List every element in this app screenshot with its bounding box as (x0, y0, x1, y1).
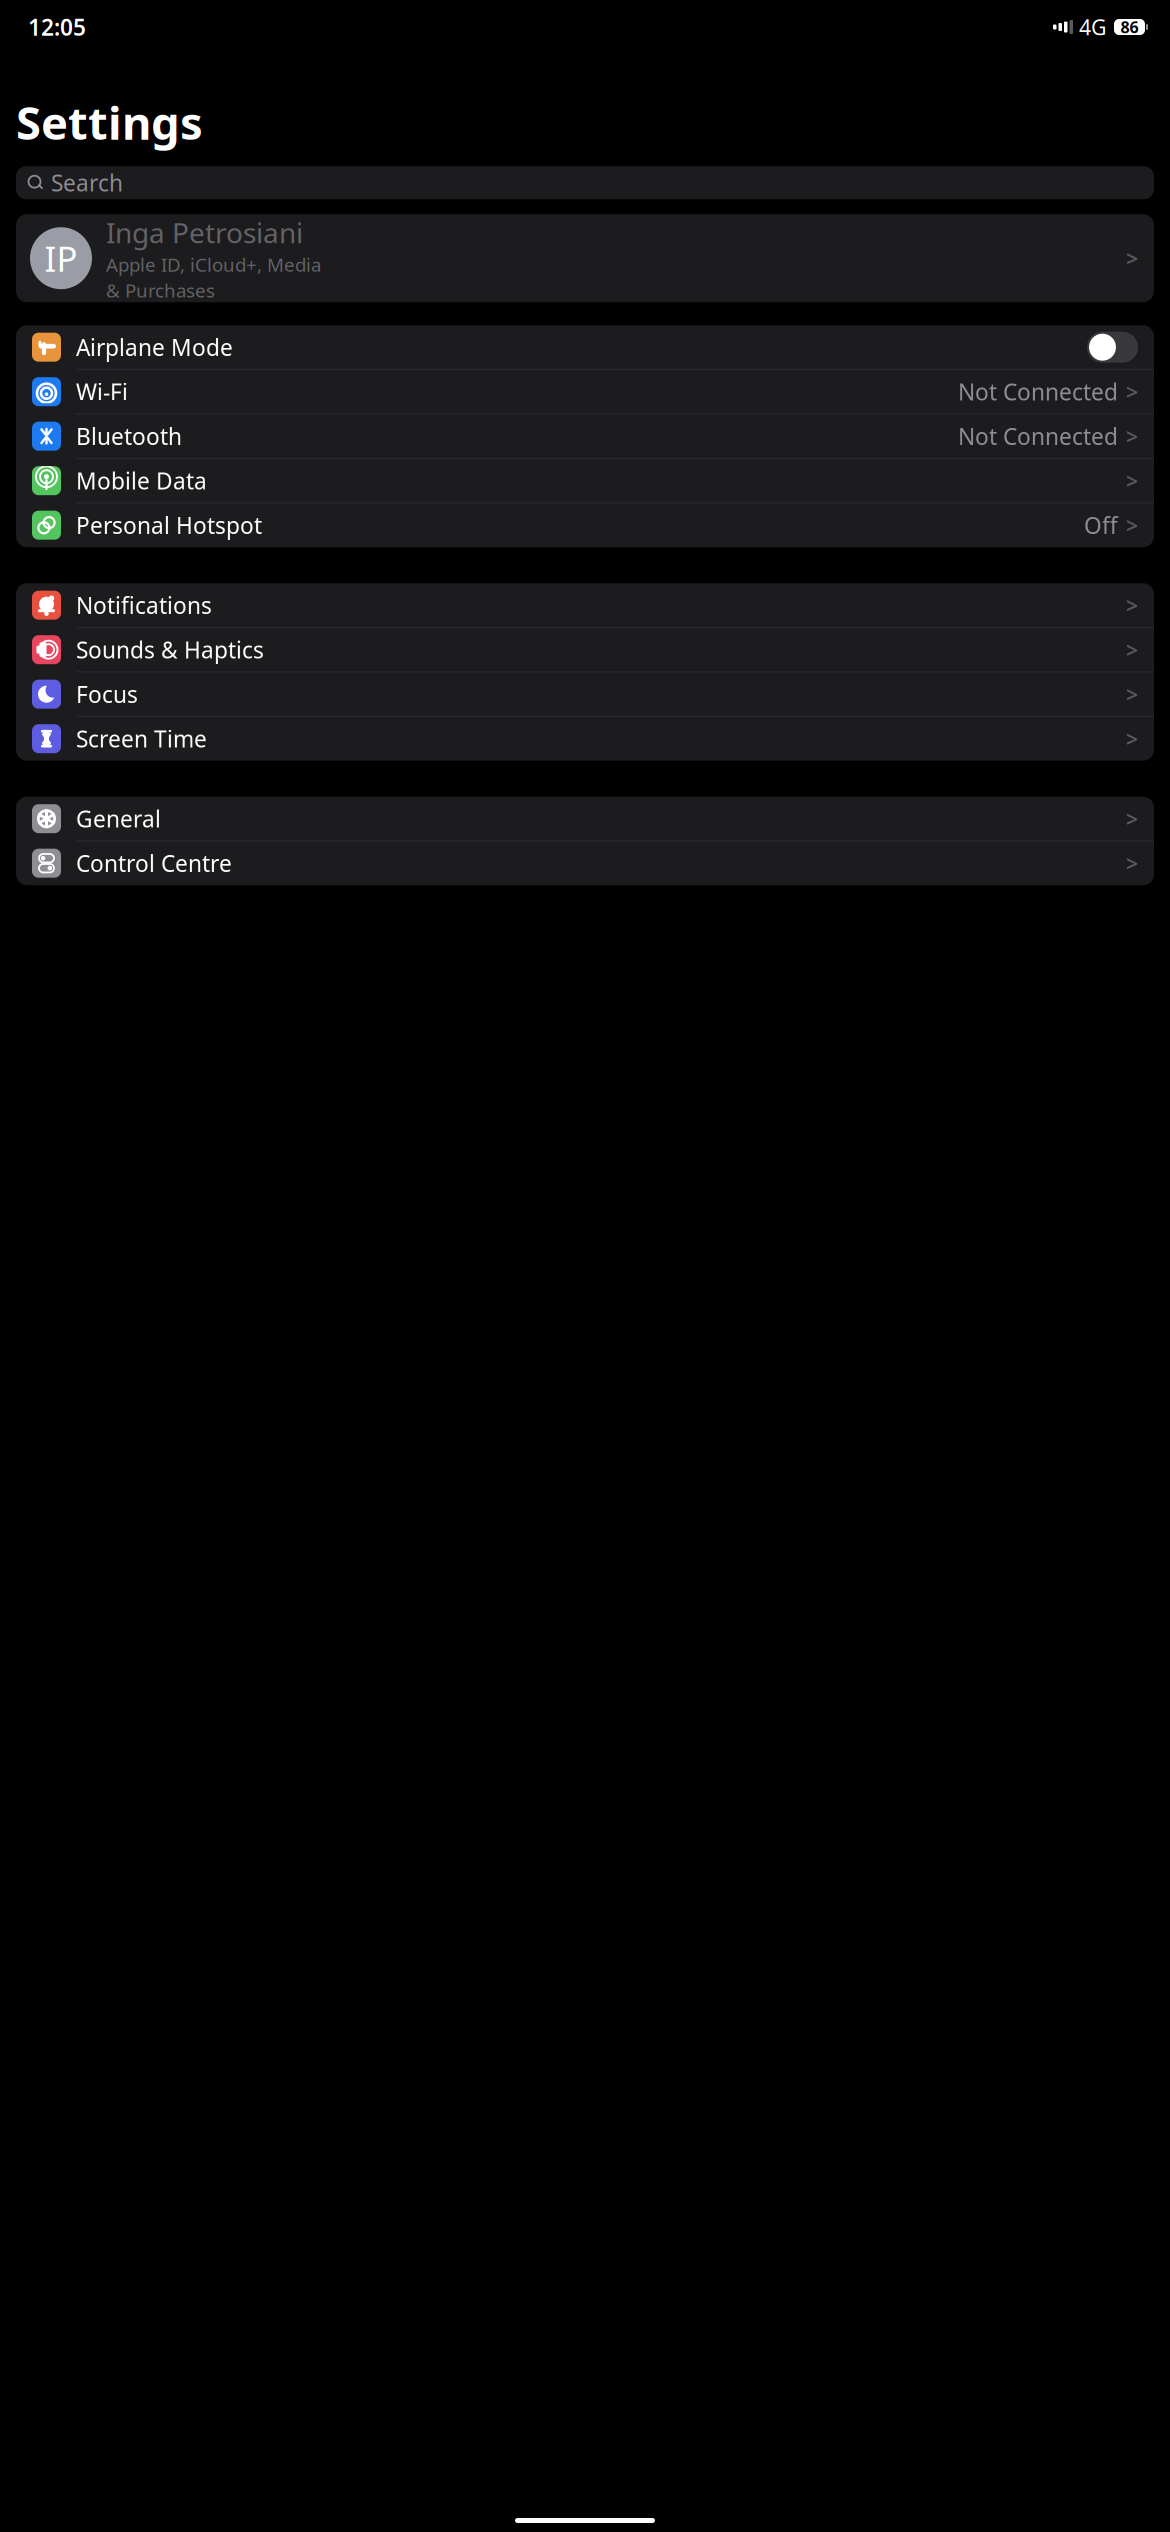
staticText: 86 (1120, 16, 1138, 38)
staticText: & Purchases (106, 278, 215, 303)
staticText: Not Connected (958, 421, 1118, 451)
staticText: Off (1084, 510, 1118, 540)
button[interactable]: Bluetooth (16, 414, 1154, 458)
staticText: Mobile Data (76, 466, 207, 496)
staticText: > (1126, 422, 1138, 450)
staticText: Sounds & Haptics (76, 635, 264, 665)
staticText: Not Connected (958, 377, 1118, 407)
staticText: > (1126, 244, 1138, 272)
button[interactable]: Screen Time (16, 717, 1154, 761)
staticText: Control Centre (76, 848, 232, 878)
staticText: 4G (1079, 13, 1107, 41)
staticText: 12:05 (28, 12, 86, 42)
staticText: Bluetooth (76, 421, 182, 451)
staticText: > (1126, 724, 1138, 753)
button[interactable]: Search (16, 166, 1154, 199)
staticText: > (1126, 635, 1138, 664)
button[interactable]: Mobile Data (16, 459, 1154, 503)
staticText: > (1126, 466, 1138, 495)
button[interactable]: Sounds & Haptics (16, 628, 1154, 672)
button[interactable]: Control Centre (16, 841, 1154, 885)
button[interactable]: General (16, 797, 1154, 841)
staticText: Search (51, 168, 123, 198)
button[interactable]: Focus (16, 672, 1154, 716)
staticText: > (1126, 849, 1138, 877)
staticText: Settings (16, 92, 203, 152)
staticText: Wi-Fi (76, 377, 128, 407)
button[interactable]: Airplane Mode (16, 325, 1154, 369)
staticText: > (1126, 680, 1138, 708)
staticText: > (1126, 377, 1138, 406)
button[interactable]: Personal Hotspot (16, 503, 1154, 547)
staticText: Personal Hotspot (76, 510, 262, 540)
button[interactable]: Notifications (16, 583, 1154, 627)
staticText: Apple ID, iCloud+, Media (106, 252, 321, 277)
staticText: > (1126, 511, 1138, 539)
staticText: Notifications (76, 590, 212, 620)
staticText: Focus (76, 679, 138, 709)
staticText: > (1126, 591, 1138, 619)
staticText: > (1126, 804, 1138, 833)
button[interactable]: Wi-Fi (16, 370, 1154, 414)
staticText: Screen Time (76, 724, 207, 754)
staticText: General (76, 804, 161, 834)
staticText: IP (44, 235, 77, 281)
staticText: Inga Petrosiani (106, 214, 303, 251)
button[interactable]: IP (16, 214, 1154, 302)
staticText: Airplane Mode (76, 332, 233, 362)
